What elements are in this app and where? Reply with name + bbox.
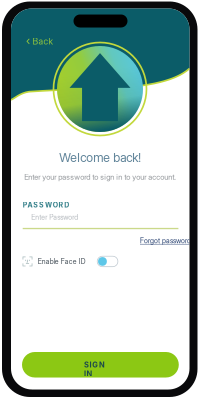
staticText: Forgot password? [140, 236, 195, 245]
staticText: Enable Face ID [38, 257, 86, 266]
staticText: Welcome back! [59, 150, 141, 165]
staticText: SIGN IN [84, 360, 117, 369]
button[interactable]: Back [22, 32, 56, 51]
staticText: Enter Password [31, 213, 78, 221]
button[interactable]: Forgot password? [138, 234, 197, 247]
button[interactable]: SIGN IN [22, 352, 179, 377]
staticText: Back [32, 36, 52, 47]
staticText: PASSWORD [23, 201, 69, 209]
staticText: Enter your password to sign in to your a… [24, 172, 176, 182]
button[interactable]: Enable Face ID [22, 254, 118, 269]
